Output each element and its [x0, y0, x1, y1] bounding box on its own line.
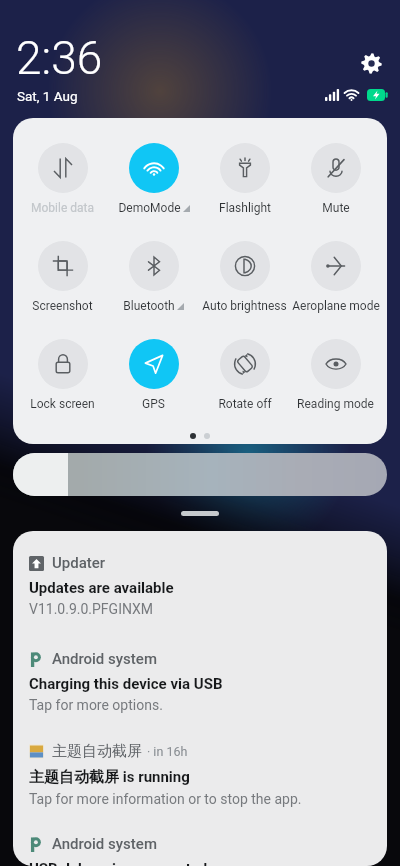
- button[interactable]: Android system: [13, 650, 387, 713]
- staticText: Updates are available: [29, 579, 174, 597]
- staticText: Android system: [52, 650, 157, 668]
- button[interactable]: Lock screen: [17, 339, 108, 411]
- staticText: Auto brightness: [202, 299, 287, 313]
- staticText: Mute: [322, 201, 350, 215]
- staticText: Tap for more options.: [29, 697, 163, 713]
- button[interactable]: Aeroplane mode: [290, 241, 381, 313]
- staticText: Flashlight: [219, 201, 271, 215]
- staticText: 2:36: [16, 31, 103, 85]
- staticText: Bluetooth: [123, 299, 175, 313]
- button[interactable]: Updater: [13, 554, 387, 617]
- button[interactable]: Screenshot: [17, 241, 108, 313]
- button[interactable]: Auto brightness: [199, 241, 290, 313]
- button[interactable]: Flashlight: [199, 143, 290, 215]
- staticText: Mobile data: [31, 201, 94, 215]
- staticText: Screenshot: [32, 299, 93, 313]
- staticText: Android system: [52, 835, 157, 853]
- staticText: Lock screen: [30, 397, 95, 411]
- staticText: 主题自动截屏: [52, 742, 142, 761]
- button[interactable]: 主题自动截屏: [13, 742, 387, 807]
- button[interactable]: Mobile data: [17, 143, 108, 215]
- staticText: USB debugging connected: [29, 860, 208, 866]
- staticText: GPS: [142, 397, 165, 411]
- staticText: Updater: [52, 554, 106, 572]
- staticText: Reading mode: [297, 397, 374, 411]
- staticText: Sat, 1 Aug: [17, 88, 78, 104]
- button[interactable]: Settings: [361, 53, 382, 74]
- staticText: Rotate off: [218, 397, 272, 411]
- staticText: DemoMode: [118, 201, 181, 215]
- button[interactable]: GPS: [108, 339, 199, 411]
- button[interactable]: [13, 453, 387, 496]
- button[interactable]: DemoMode: [108, 143, 199, 215]
- staticText: Aeroplane mode: [292, 299, 380, 313]
- button[interactable]: Bluetooth: [108, 241, 199, 313]
- staticText: · in 16h: [147, 744, 188, 759]
- button[interactable]: Mute: [290, 143, 381, 215]
- staticText: Charging this device via USB: [29, 675, 223, 693]
- staticText: V11.0.9.0.PFGINXM: [29, 601, 154, 617]
- button[interactable]: Reading mode: [290, 339, 381, 411]
- button[interactable]: Android system: [13, 835, 387, 866]
- staticText: 主题自动截屏 is running: [29, 768, 190, 787]
- button[interactable]: Rotate off: [199, 339, 290, 411]
- staticText: Tap for more information or to stop the …: [29, 791, 302, 807]
